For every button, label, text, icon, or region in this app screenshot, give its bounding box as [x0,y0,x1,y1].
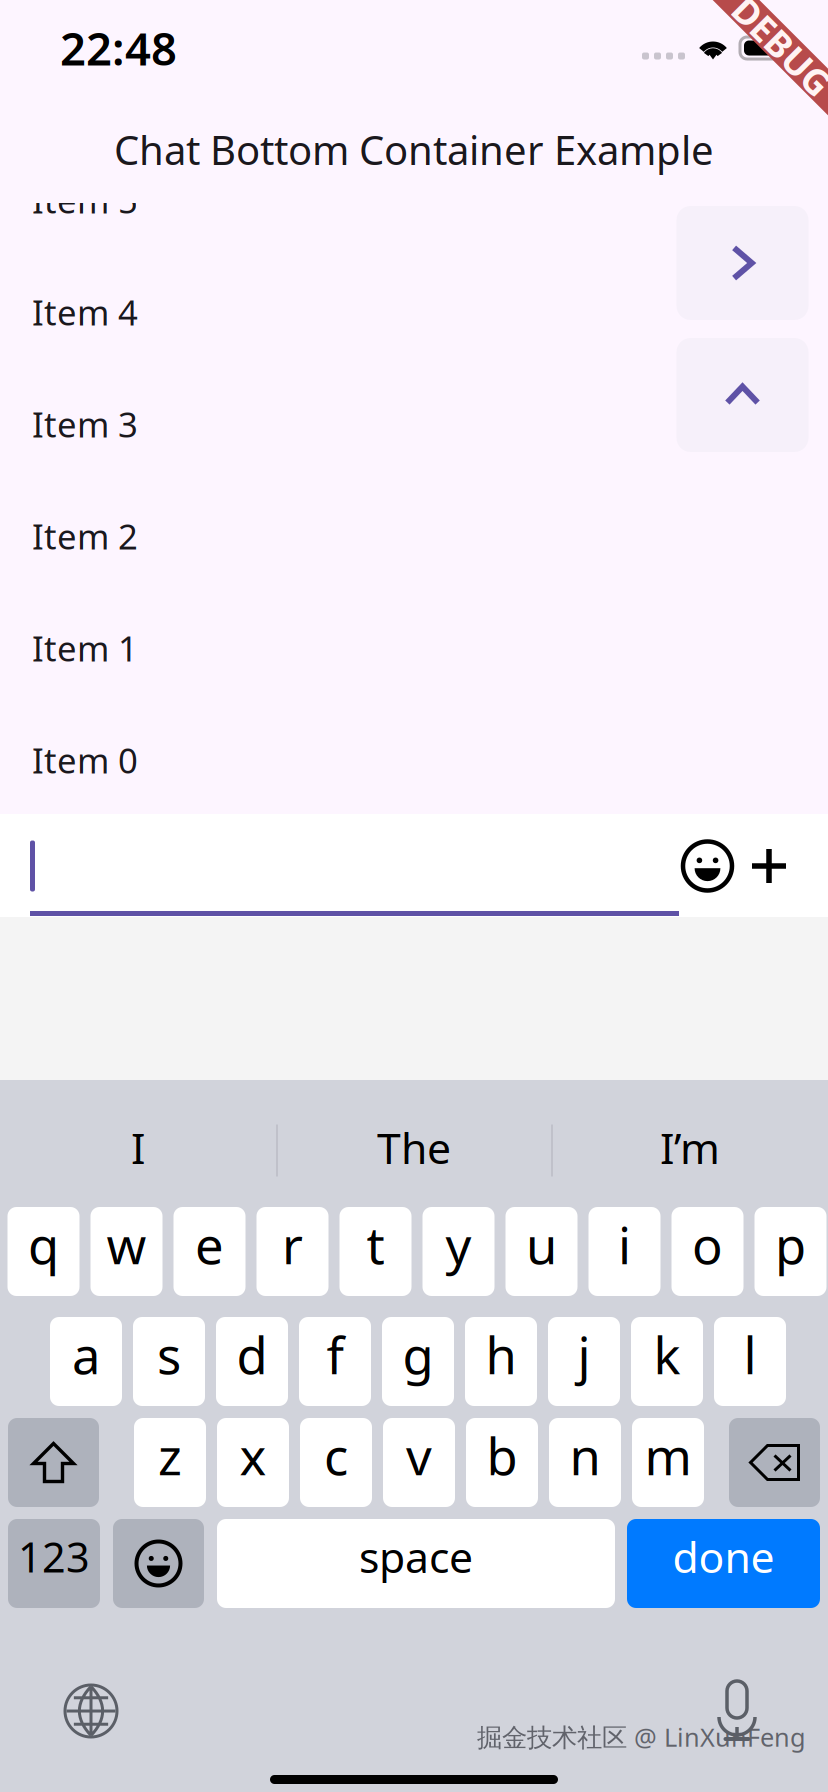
staticText: x [239,1422,266,1489]
button[interactable]: Shift [8,1418,99,1507]
staticText: Item 0 [32,737,138,783]
button[interactable]: Delete [729,1418,820,1507]
button[interactable]: More [752,849,786,883]
staticText: 123 [18,1529,90,1584]
staticText: l [743,1321,756,1388]
button[interactable]: w [90,1207,162,1296]
staticText: Item 4 [32,289,138,335]
staticText: Item 2 [32,513,138,559]
button[interactable]: I’m [552,1080,828,1195]
button[interactable]: b [466,1418,538,1507]
staticText: u [526,1211,557,1278]
staticText: 掘金技术社区 @ LinXunFeng [477,1720,806,1754]
button[interactable]: f [299,1317,371,1406]
staticText: h [485,1321,516,1388]
button[interactable]: Dictate [699,1673,775,1749]
button[interactable]: p [754,1207,826,1296]
button[interactable]: Next keyboard [53,1673,129,1749]
button[interactable]: Scroll right [676,206,808,320]
staticText: m [644,1422,691,1489]
button[interactable]: u [505,1207,577,1296]
staticText: The [377,1119,451,1176]
button[interactable]: o [671,1207,743,1296]
button[interactable]: x [217,1418,289,1507]
staticText: Item 5 [32,177,138,223]
button[interactable]: n [549,1418,621,1507]
staticText: 22:48 [60,18,177,78]
staticText: a [72,1321,100,1388]
button[interactable]: c [300,1418,372,1507]
button[interactable]: z [134,1418,206,1507]
button[interactable]: t [339,1207,411,1296]
button[interactable]: s [133,1317,205,1406]
button[interactable]: space [217,1519,615,1608]
staticText: I [131,1119,145,1176]
staticText: o [692,1211,723,1278]
staticText: g [402,1321,433,1388]
button[interactable]: r [256,1207,328,1296]
staticText: y [445,1211,471,1278]
staticText: I’m [660,1119,720,1176]
staticText: w [106,1211,146,1278]
button[interactable]: e [173,1207,245,1296]
staticText: d [236,1321,267,1388]
button[interactable]: i [588,1207,660,1296]
button[interactable]: Emoji [113,1519,204,1608]
button[interactable]: q [7,1207,79,1296]
button[interactable]: Scroll to top [676,338,808,452]
staticText: f [326,1321,343,1388]
button[interactable]: m [632,1418,704,1507]
button[interactable]: d [216,1317,288,1406]
staticText: e [195,1211,224,1278]
staticText: c [324,1422,348,1489]
staticText: r [282,1211,303,1278]
staticText: Item 3 [32,401,138,447]
button[interactable]: Emoji [683,841,732,890]
staticText: j [577,1321,590,1388]
staticText: q [28,1211,59,1278]
button[interactable]: l [714,1317,786,1406]
staticText: DEBUG [720,22,828,70]
button[interactable]: j [548,1317,620,1406]
staticText: z [158,1422,182,1489]
button[interactable]: h [465,1317,537,1406]
button[interactable]: y [422,1207,494,1296]
button[interactable]: done [627,1519,820,1608]
staticText: i [618,1211,631,1278]
staticText: p [775,1211,806,1278]
button[interactable]: v [383,1418,455,1507]
staticText: v [406,1422,432,1489]
staticText: Chat Bottom Container Example [114,123,714,176]
button[interactable]: g [382,1317,454,1406]
button[interactable]: a [50,1317,122,1406]
button[interactable]: The [276,1080,552,1195]
staticText: space [359,1528,473,1585]
staticText: k [653,1321,680,1388]
staticText: s [157,1321,181,1388]
staticText: done [672,1528,774,1585]
button[interactable]: 123 [8,1519,100,1608]
staticText: b [486,1422,517,1489]
staticText: n [569,1422,600,1489]
button[interactable]: I [0,1080,276,1195]
staticText: Item 1 [32,625,138,671]
button[interactable]: k [631,1317,703,1406]
staticText: t [366,1211,384,1278]
